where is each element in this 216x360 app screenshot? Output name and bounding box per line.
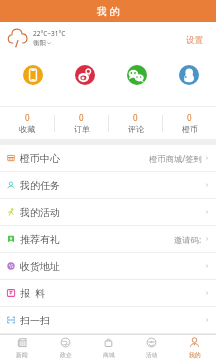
button[interactable]: 我的任务	[0, 172, 216, 198]
staticText: 我的活动	[20, 206, 60, 219]
staticText: 商城	[103, 351, 115, 358]
staticText: 收货地址	[20, 260, 60, 273]
staticText: 收藏	[19, 124, 35, 134]
button[interactable]: 橙币中心	[0, 145, 216, 171]
button[interactable]: Phone	[23, 65, 43, 85]
button[interactable]: 政企	[44, 335, 87, 360]
staticText: 设置	[186, 35, 203, 46]
staticText: 新闻	[16, 351, 28, 358]
staticText: 我 的	[97, 4, 120, 18]
staticText: 0	[133, 112, 138, 123]
button[interactable]: 0	[163, 107, 216, 139]
staticText: 评论	[128, 124, 144, 134]
button[interactable]: 报 料	[0, 280, 216, 306]
staticText: 0	[187, 112, 192, 123]
button[interactable]: 0	[0, 107, 54, 139]
button[interactable]: 新闻	[0, 335, 44, 360]
staticText: 我的	[189, 351, 201, 358]
staticText: 橙币商城/签到	[149, 153, 202, 164]
staticText: 报 料	[20, 286, 46, 300]
staticText: 0	[25, 112, 30, 123]
staticText: 我的任务	[20, 179, 60, 192]
button[interactable]: 我的活动	[0, 199, 216, 225]
staticText: 橙币	[182, 124, 198, 134]
staticText: 政企	[60, 351, 72, 358]
button[interactable]: 我的	[173, 335, 216, 360]
staticText: 扫一扫	[20, 314, 50, 327]
button[interactable]: 0	[55, 107, 108, 139]
button[interactable]: QQ	[179, 65, 199, 85]
button[interactable]: 设置	[178, 25, 216, 50]
staticText: 订单	[74, 124, 90, 134]
button[interactable]: WeChat	[127, 65, 147, 85]
staticText: 0	[79, 112, 84, 123]
button[interactable]: 推荐有礼	[0, 226, 216, 252]
button[interactable]: 商城	[87, 335, 130, 360]
staticText: 推荐有礼	[20, 233, 60, 246]
button[interactable]: 活动	[130, 335, 173, 360]
staticText: 活动	[146, 351, 158, 358]
button[interactable]: 扫一扫	[0, 307, 216, 333]
staticText: 邀请码:	[174, 234, 202, 245]
staticText: 橙币中心	[20, 152, 60, 165]
button[interactable]: 收货地址	[0, 253, 216, 279]
button[interactable]: 0	[109, 107, 162, 139]
staticText: 衡阳	[33, 39, 46, 47]
button[interactable]: Weibo	[75, 65, 95, 85]
staticText: 22°C~31°C	[33, 29, 66, 38]
